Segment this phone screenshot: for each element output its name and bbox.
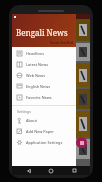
- button[interactable]: [12, 63, 90, 87]
- button[interactable]: [12, 111, 90, 137]
- button[interactable]: [12, 139, 90, 159]
- button[interactable]: Application Settings: [12, 137, 76, 148]
- staticText: Favorite News: [26, 95, 52, 100]
- staticText: Latest News: [26, 62, 49, 67]
- staticText: Settings: [17, 109, 31, 114]
- button[interactable]: About: [12, 115, 76, 126]
- button[interactable]: Home: [45, 166, 57, 175]
- button[interactable]: English News: [12, 81, 76, 92]
- staticText: Application Settings: [26, 140, 63, 145]
- button[interactable]: Headlines: [12, 48, 76, 59]
- staticText: Web News: [26, 73, 45, 78]
- button[interactable]: Favorite News: [12, 92, 76, 103]
- staticText: Touch the Bird: [50, 41, 73, 45]
- staticText: About: [26, 118, 37, 123]
- button[interactable]: [12, 89, 90, 109]
- staticText: Add New Paper: [26, 129, 54, 134]
- button[interactable]: Add New Paper: [12, 126, 76, 137]
- button[interactable]: Recents: [68, 166, 80, 175]
- staticText: Bengali News: [16, 27, 68, 38]
- staticText: English News: [26, 84, 51, 89]
- button[interactable]: Add: [76, 137, 87, 148]
- button[interactable]: Latest News: [12, 59, 76, 70]
- button[interactable]: [12, 19, 90, 41]
- button[interactable]: [12, 43, 90, 61]
- button[interactable]: Back: [23, 166, 35, 175]
- button[interactable]: Web News: [12, 70, 76, 81]
- staticText: Headlines: [26, 51, 45, 56]
